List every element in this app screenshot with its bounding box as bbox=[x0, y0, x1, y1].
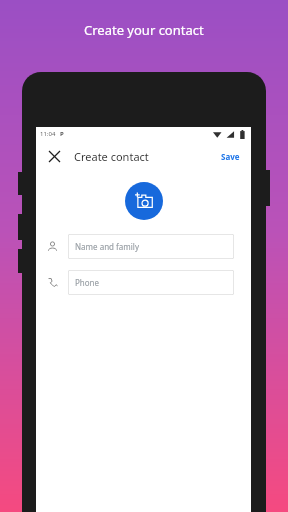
button[interactable]: Add photo bbox=[125, 182, 163, 220]
staticText: Name and family bbox=[75, 241, 139, 252]
staticText: Phone bbox=[75, 277, 100, 288]
staticText: Save bbox=[221, 151, 240, 162]
staticText: Create contact bbox=[74, 149, 149, 164]
staticText: P bbox=[60, 130, 64, 138]
button[interactable]: Phone bbox=[68, 270, 234, 295]
staticText: 11:04 bbox=[40, 130, 56, 138]
button[interactable]: Close bbox=[43, 145, 65, 167]
button[interactable]: Name and family bbox=[68, 234, 234, 259]
staticText: Create your contact bbox=[84, 21, 204, 39]
button[interactable]: Save bbox=[217, 147, 244, 166]
